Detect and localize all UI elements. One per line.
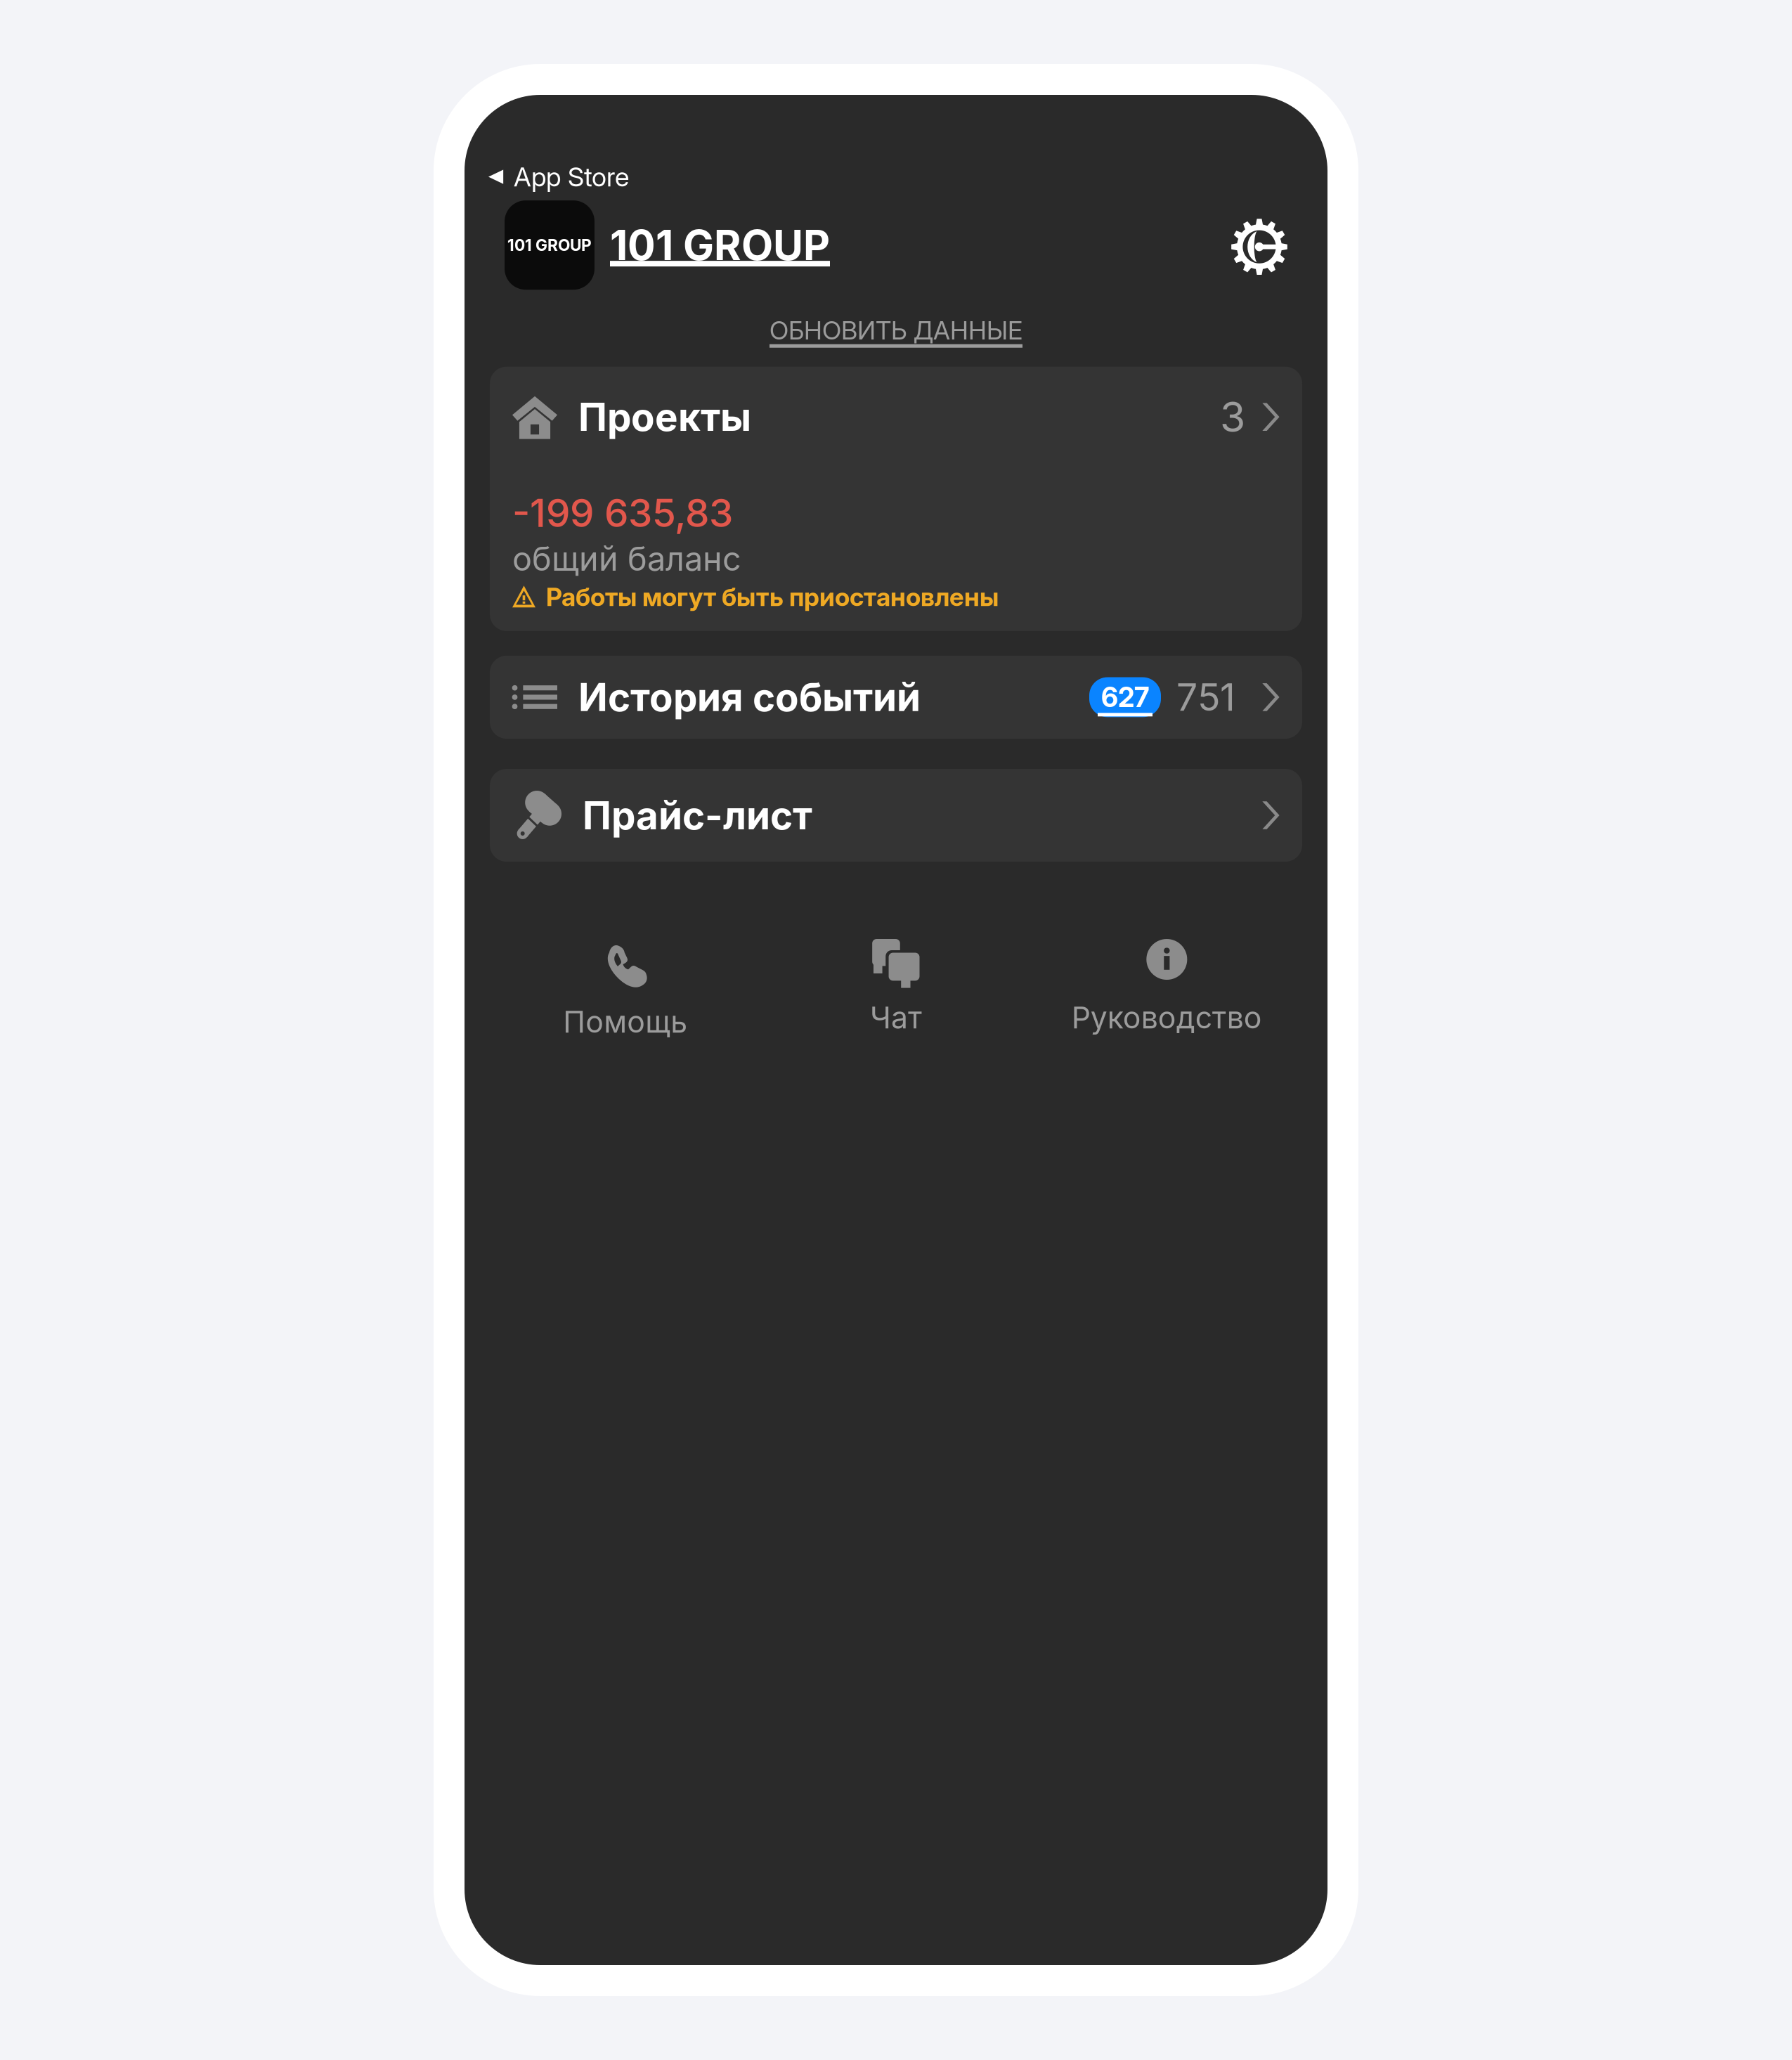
staticText: Работы могут быть приостановлены — [546, 581, 999, 612]
staticText: ОБНОВИТЬ ДАННЫЕ — [770, 315, 1022, 346]
staticText: Проекты — [578, 394, 751, 440]
staticText: 101 GROUP — [610, 220, 830, 270]
staticText: 101 GROUP — [507, 235, 592, 255]
staticText: 627 — [1101, 681, 1149, 714]
staticText: Чат — [870, 999, 922, 1036]
staticText: Руководство — [1072, 999, 1262, 1036]
button[interactable]: Прайс-лист — [490, 769, 1302, 862]
button[interactable]: 101 GROUP — [610, 220, 830, 276]
button[interactable]: История событий — [490, 656, 1302, 739]
staticText: общий баланс — [512, 539, 741, 579]
button[interactable]: Settings — [1220, 207, 1299, 286]
staticText: -199 635,83 — [512, 490, 733, 536]
staticText: App Store — [514, 161, 629, 193]
staticText: 3 — [1220, 392, 1245, 442]
button[interactable]: Чат — [761, 939, 1031, 1036]
staticText: История событий — [578, 674, 921, 720]
button[interactable]: Помощь — [490, 939, 761, 1040]
staticText: 751 — [1176, 675, 1235, 720]
staticText: Помощь — [563, 1004, 687, 1040]
button[interactable]: ОБНОВИТЬ ДАННЫЕ — [770, 315, 1022, 349]
button[interactable]: Руководство — [1031, 939, 1302, 1036]
button[interactable]: Проекты — [490, 367, 1302, 631]
staticText: Прайс-лист — [583, 792, 812, 839]
